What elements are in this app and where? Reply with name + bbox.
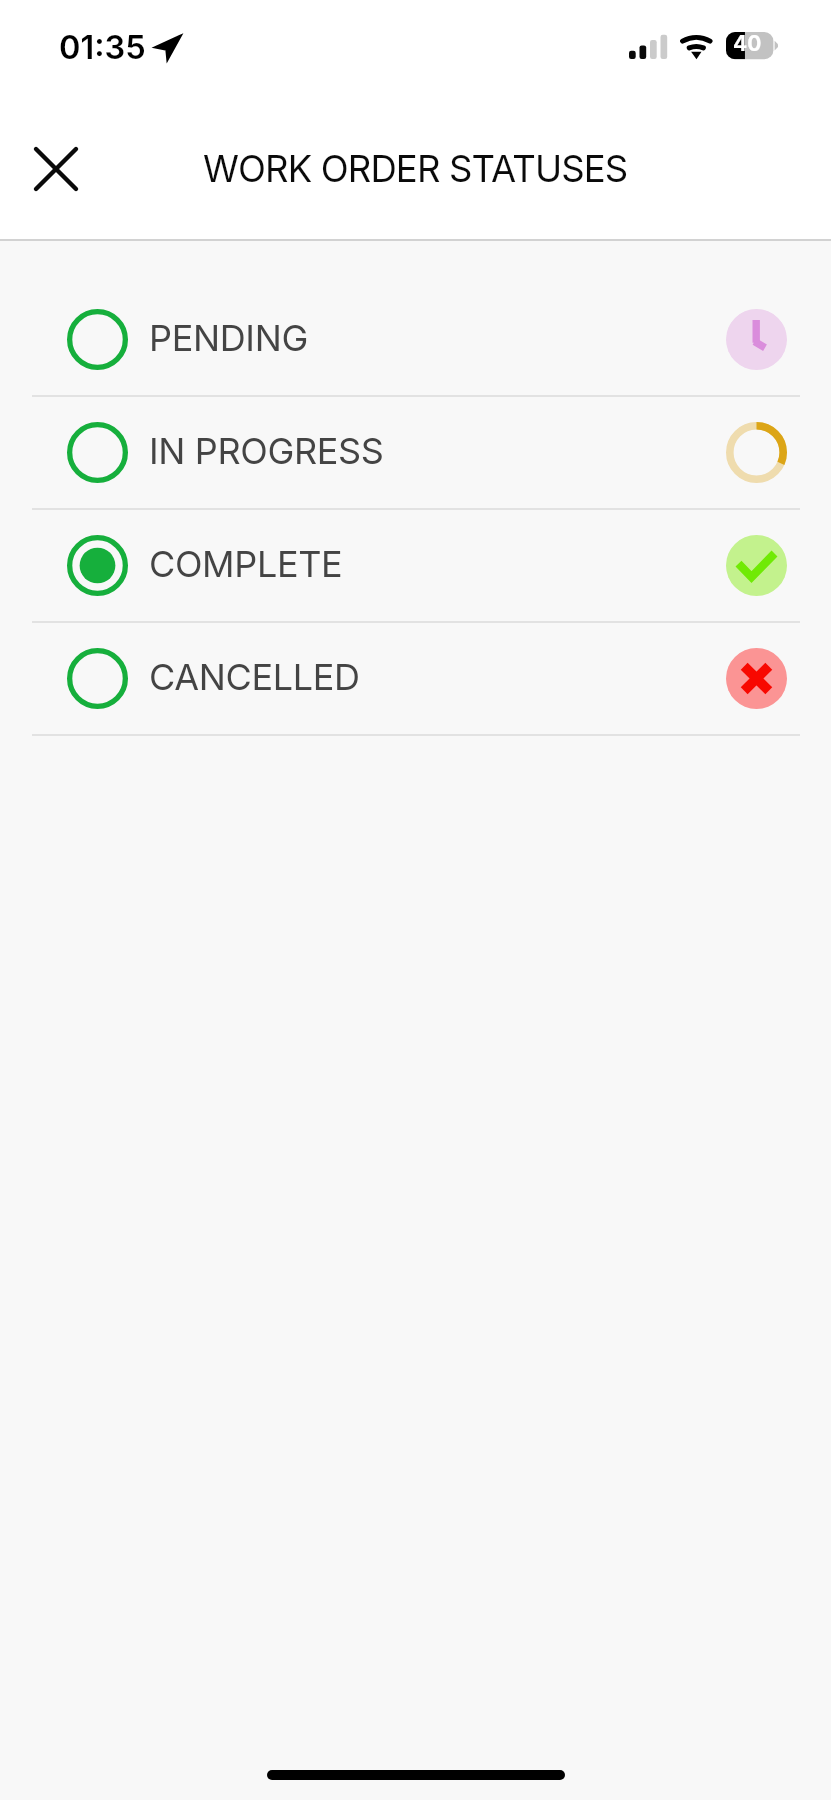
staticText: WORK ORDER STATUSES xyxy=(203,147,628,191)
button[interactable]: CANCELLED xyxy=(0,623,831,734)
button[interactable]: PENDING xyxy=(0,284,831,395)
staticText: CANCELLED xyxy=(149,655,360,699)
staticText: PENDING xyxy=(149,316,308,360)
staticText: IN PROGRESS xyxy=(149,429,384,473)
staticText: 40 xyxy=(733,31,762,56)
button[interactable]: Close xyxy=(21,134,91,204)
button[interactable]: IN PROGRESS xyxy=(0,397,831,508)
staticText: 01:35 xyxy=(59,28,146,67)
staticText: COMPLETE xyxy=(149,542,343,586)
button[interactable]: COMPLETE xyxy=(0,510,831,621)
